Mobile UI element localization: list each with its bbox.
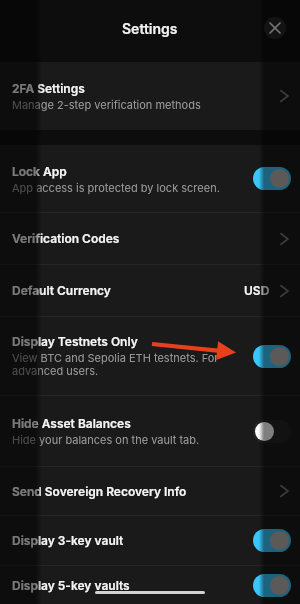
staticText: Verification Codes [12,231,120,246]
button[interactable]: Verification Codes [0,213,300,264]
staticText: Display Testnets Only [12,334,138,349]
staticText: View BTC and Sepolia ETH testnets. For a… [12,351,253,378]
button[interactable]: Enabled toggle [253,345,291,368]
staticText: Default Currency [12,283,111,298]
button[interactable]: Enabled toggle [253,167,291,190]
button[interactable]: Display 5-key vaults [0,566,300,604]
staticText: 2FA Settings [12,81,85,96]
button[interactable]: Lock App [0,145,300,212]
button[interactable]: Disabled toggle [253,420,291,443]
staticText: Manage 2-step verification methods [12,98,201,111]
staticText: Hide your balances on the vault tab. [12,433,200,446]
button[interactable]: Hide Asset Balances [0,396,300,466]
staticText: Hide Asset Balances [12,416,131,431]
button[interactable]: Default Currency [0,265,300,316]
staticText: Settings [122,20,178,37]
button[interactable]: Enabled toggle [253,574,291,597]
button[interactable]: Send Sovereign Recovery Info [0,467,300,515]
staticText: Display 3-key vault [12,533,124,548]
staticText: Send Sovereign Recovery Info [12,484,187,499]
staticText: App access is protected by lock screen. [12,181,220,194]
button[interactable]: 2FA Settings [0,62,300,130]
staticText: USD [244,283,270,298]
button[interactable]: Close [264,17,286,39]
staticText: Lock App [12,164,67,179]
staticText: Display 5-key vaults [12,578,130,593]
button[interactable]: Display 3-key vault [0,516,300,565]
button[interactable]: Display Testnets Only [0,317,300,395]
button[interactable]: Enabled toggle [253,529,291,552]
